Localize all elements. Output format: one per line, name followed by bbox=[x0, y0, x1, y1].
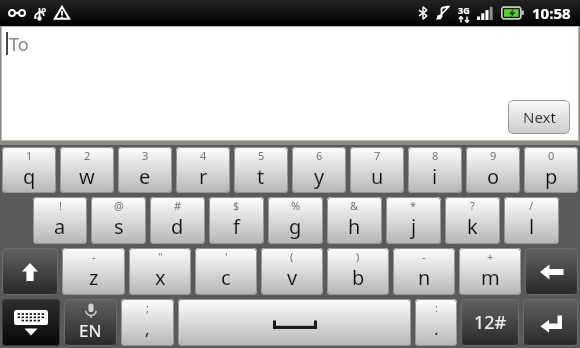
staticText: u bbox=[371, 163, 384, 190]
button[interactable]: Symbols bbox=[461, 299, 519, 346]
button[interactable]: Enter bbox=[523, 299, 578, 346]
button[interactable]: & bbox=[327, 197, 382, 244]
staticText: 6 bbox=[316, 148, 323, 163]
button[interactable]: ' bbox=[195, 248, 257, 295]
button[interactable]: To bbox=[1, 26, 579, 141]
staticText: % bbox=[291, 198, 301, 213]
staticText: @ bbox=[114, 198, 124, 213]
staticText: 8 bbox=[432, 148, 439, 163]
staticText: To bbox=[9, 32, 29, 57]
staticText: EN bbox=[79, 319, 102, 342]
staticText: m bbox=[481, 264, 500, 291]
staticText: $ bbox=[233, 198, 240, 213]
staticText: t bbox=[257, 163, 265, 190]
button[interactable]: ? bbox=[445, 197, 500, 244]
button[interactable]: 2 bbox=[60, 147, 114, 193]
staticText: b bbox=[352, 264, 365, 291]
staticText: j bbox=[411, 213, 417, 240]
button[interactable]: 3 bbox=[118, 147, 172, 193]
staticText: s bbox=[114, 213, 124, 240]
staticText: o bbox=[487, 163, 500, 190]
button[interactable]: 4 bbox=[176, 147, 230, 193]
button[interactable]: Shift bbox=[2, 248, 58, 295]
staticText: i bbox=[432, 163, 438, 190]
staticText: 5 bbox=[258, 148, 265, 163]
button[interactable]: ) bbox=[327, 248, 389, 295]
staticText: - bbox=[92, 249, 96, 264]
staticText: , bbox=[145, 317, 150, 340]
staticText: 2 bbox=[84, 148, 91, 163]
button[interactable]: " bbox=[129, 248, 191, 295]
button[interactable]: $ bbox=[209, 197, 264, 244]
staticText: ; bbox=[146, 300, 149, 315]
staticText: a bbox=[54, 213, 66, 240]
button[interactable]: + bbox=[459, 248, 521, 295]
staticText: h bbox=[348, 213, 361, 240]
button[interactable]: ( bbox=[261, 248, 323, 295]
button[interactable]: ; bbox=[121, 299, 174, 346]
staticText: v bbox=[287, 264, 298, 291]
staticText: e bbox=[139, 163, 151, 190]
staticText: p bbox=[545, 163, 558, 190]
staticText: ? bbox=[470, 198, 475, 213]
button[interactable]: % bbox=[268, 197, 323, 244]
button[interactable]: - bbox=[62, 248, 125, 295]
staticText: 12# bbox=[474, 310, 507, 335]
button[interactable]: ! bbox=[33, 197, 87, 244]
button[interactable]: 6 bbox=[292, 147, 346, 193]
staticText: k bbox=[467, 213, 478, 240]
button[interactable]: * bbox=[386, 197, 441, 244]
button[interactable]: 5 bbox=[234, 147, 288, 193]
staticText: d bbox=[171, 213, 184, 240]
staticText: ! bbox=[59, 198, 62, 213]
staticText: r bbox=[199, 163, 208, 190]
staticText: c bbox=[221, 264, 231, 291]
button[interactable]: Hide keyboard bbox=[2, 299, 60, 346]
button[interactable]: Backspace bbox=[525, 248, 578, 295]
staticText: ) bbox=[356, 249, 360, 264]
button[interactable]: 8 bbox=[408, 147, 462, 193]
staticText: & bbox=[350, 198, 359, 213]
staticText: * bbox=[410, 198, 417, 213]
staticText: + bbox=[487, 249, 494, 264]
staticText: n bbox=[418, 264, 431, 291]
staticText: l bbox=[529, 213, 535, 240]
button[interactable]: : bbox=[415, 299, 457, 346]
button[interactable]: - bbox=[393, 248, 455, 295]
staticText: - bbox=[422, 249, 426, 264]
staticText: z bbox=[89, 264, 99, 291]
button[interactable]: Input language English bbox=[64, 299, 117, 346]
button[interactable]: 1 bbox=[2, 147, 56, 193]
staticText: 7 bbox=[374, 148, 381, 163]
staticText: Next bbox=[523, 107, 556, 127]
staticText: 10:58 bbox=[532, 3, 571, 23]
staticText: 0 bbox=[548, 148, 555, 163]
button[interactable]: # bbox=[150, 197, 205, 244]
button[interactable]: 9 bbox=[466, 147, 520, 193]
button[interactable]: 0 bbox=[524, 147, 578, 193]
staticText: : bbox=[435, 300, 438, 315]
staticText: q bbox=[23, 163, 36, 190]
staticText: # bbox=[174, 198, 182, 213]
button[interactable]: Next bbox=[508, 100, 570, 134]
staticText: ' bbox=[225, 249, 228, 264]
staticText: 3 bbox=[142, 148, 149, 163]
staticText: f bbox=[233, 213, 240, 240]
button[interactable]: 7 bbox=[350, 147, 404, 193]
button[interactable] bbox=[178, 299, 411, 346]
staticText: 3G bbox=[458, 4, 470, 16]
staticText: . bbox=[434, 317, 439, 340]
staticText: x bbox=[155, 264, 166, 291]
staticText: " bbox=[158, 249, 163, 264]
button[interactable]: / bbox=[504, 197, 559, 244]
staticText: 1 bbox=[26, 148, 33, 163]
staticText: / bbox=[529, 198, 534, 213]
staticText: g bbox=[289, 213, 302, 240]
staticText: 9 bbox=[490, 148, 497, 163]
button[interactable]: @ bbox=[91, 197, 146, 244]
staticText: ( bbox=[290, 249, 294, 264]
staticText: w bbox=[79, 163, 95, 190]
staticText: y bbox=[314, 163, 325, 190]
staticText: 4 bbox=[200, 148, 207, 163]
